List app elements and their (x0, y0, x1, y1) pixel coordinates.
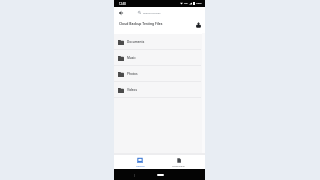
button[interactable]: Upload to cloud backup (194, 20, 203, 29)
button[interactable]: Downloads (159, 155, 198, 169)
button[interactable]: Music (114, 50, 205, 66)
staticText: Videos (127, 88, 138, 92)
staticText: Music (127, 56, 136, 60)
button[interactable]: Videos (114, 82, 205, 98)
staticText: LTE (184, 2, 188, 5)
staticText: 12:30 (119, 2, 126, 6)
button[interactable]: Back (116, 8, 125, 17)
button[interactable]: Documents (114, 34, 205, 50)
staticText: Search for files (143, 11, 161, 14)
staticText: Devices (136, 164, 145, 167)
staticText: Photos (127, 72, 138, 76)
staticText: 100% (196, 2, 202, 5)
staticText: Downloads (172, 164, 185, 167)
staticText: Documents (127, 40, 145, 44)
button[interactable]: Devices (121, 155, 159, 169)
button[interactable]: Photos (114, 66, 205, 82)
staticText: Cloud Backup Testing Files (119, 21, 163, 25)
